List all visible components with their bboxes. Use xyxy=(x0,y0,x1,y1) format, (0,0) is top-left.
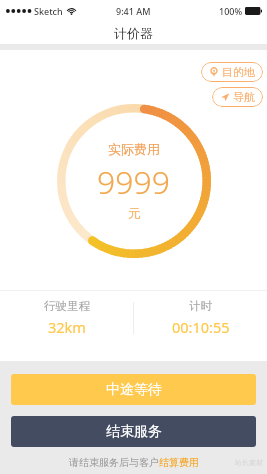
button[interactable]: 结束服务 xyxy=(11,416,256,447)
staticText: 行驶里程 xyxy=(44,299,90,313)
staticText: 计价器 xyxy=(114,25,153,41)
staticText: 00:10:55 xyxy=(172,317,230,337)
staticText: 9999 xyxy=(97,160,171,204)
staticText: 结束服务 xyxy=(106,423,162,441)
button[interactable]: 导航 xyxy=(212,87,263,107)
staticText: 站长素材 xyxy=(235,458,263,467)
staticText: 导航 xyxy=(233,90,255,104)
staticText: 计时 xyxy=(189,299,212,313)
staticText: Sketch xyxy=(34,5,63,17)
staticText: 元 xyxy=(128,205,141,221)
staticText: 中途等待 xyxy=(106,381,162,399)
staticText: 9:41 AM xyxy=(116,5,151,17)
staticText: 请结束服务后与客户结算费用 xyxy=(69,456,199,469)
staticText: 实际费用 xyxy=(108,141,160,157)
button[interactable]: 目的地 xyxy=(201,62,263,82)
staticText: 32km xyxy=(48,317,86,337)
button[interactable]: 中途等待 xyxy=(11,374,256,405)
staticText: 100% xyxy=(219,5,243,17)
staticText: 目的地 xyxy=(222,65,255,79)
